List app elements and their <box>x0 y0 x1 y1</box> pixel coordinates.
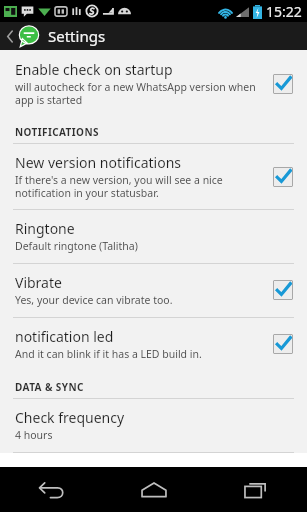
staticText: will autocheck for a new WhatsApp versio… <box>15 80 256 107</box>
staticText: 4 hours <box>15 428 53 442</box>
button[interactable]: Recent apps <box>205 467 307 512</box>
staticText: notification led <box>15 327 114 346</box>
button[interactable]: Ringtone <box>0 210 307 263</box>
button[interactable]: Toggle setting <box>273 74 293 94</box>
staticText: Check frequency <box>15 408 125 427</box>
staticText: Settings <box>48 26 106 46</box>
button[interactable]: Home <box>103 467 205 512</box>
staticText: New version notifications <box>15 153 182 172</box>
staticText: Yes, your device can vibrate too. <box>15 293 173 307</box>
button[interactable]: Enable check on startup <box>0 50 307 116</box>
staticText: Default ringtone (Talitha) <box>15 239 138 253</box>
staticText: Ringtone <box>15 219 75 238</box>
staticText: If there's a new version, you will see a… <box>15 173 223 200</box>
button[interactable]: Back <box>0 467 103 512</box>
other: Back <box>4 24 16 48</box>
staticText: Vibrate <box>15 273 62 292</box>
staticText: DATA & SYNC <box>15 380 84 394</box>
staticText: 15:22 <box>266 2 302 21</box>
button[interactable]: Back <box>0 22 307 50</box>
button[interactable]: Check frequency <box>0 399 307 452</box>
button[interactable]: Vibrate <box>0 264 307 317</box>
button[interactable]: New version notifications <box>0 144 307 209</box>
button[interactable]: Toggle setting <box>273 167 293 187</box>
staticText: And it can blink if it has a LED build i… <box>15 347 202 361</box>
button[interactable]: notification led <box>0 318 307 371</box>
staticText: Enable check on startup <box>15 60 173 79</box>
button[interactable]: Toggle setting <box>273 334 293 354</box>
staticText: NOTIFICATIONS <box>15 125 99 139</box>
button[interactable]: Toggle setting <box>273 280 293 300</box>
